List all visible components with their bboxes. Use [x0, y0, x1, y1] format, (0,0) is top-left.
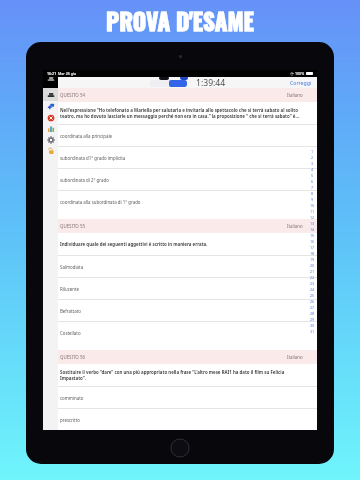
staticText: subordinata di 2° grado — [60, 177, 109, 183]
staticText: 100% — [295, 71, 305, 76]
button[interactable]: coordinata alla subordinata di 1° grado — [58, 191, 317, 212]
button[interactable]: subordinata di 2° grado — [58, 169, 317, 190]
staticText: PROVA D'ESAME — [106, 4, 254, 38]
staticText: 5 — [311, 173, 314, 178]
staticText: 26 — [310, 299, 315, 304]
button[interactable]: Statistiche — [43, 123, 58, 134]
staticText: 25 — [310, 293, 315, 298]
staticText: QUESITO 54 — [60, 92, 85, 98]
staticText: 6 — [311, 179, 314, 184]
staticText: Nell'espressione “Ho telefonato a Mariel… — [60, 107, 300, 119]
staticText: Italiano — [287, 223, 303, 229]
staticText: 16 — [310, 239, 315, 244]
button[interactable]: coordinata alla principale — [58, 125, 317, 146]
staticText: Italiano — [287, 92, 303, 98]
button[interactable]: Errori — [43, 112, 58, 123]
button[interactable]: Correggi — [290, 79, 317, 86]
staticText: 15 — [310, 233, 315, 238]
staticText: 12 — [310, 215, 315, 220]
staticText: Costellato — [60, 330, 81, 336]
staticText: 11 — [310, 209, 315, 214]
staticText: 4 — [311, 167, 314, 172]
staticText: QUESITO 55 — [60, 223, 85, 229]
staticText: 24 — [310, 287, 315, 292]
button[interactable]: Impostazioni — [43, 134, 58, 145]
staticText: Italiano — [287, 354, 303, 360]
staticText: 20 — [310, 263, 315, 268]
staticText: coordinata alla subordinata di 1° grado — [60, 199, 141, 205]
staticText: Salmodiata — [60, 264, 84, 270]
staticText: 30 — [310, 323, 315, 328]
staticText: Mar 26 giu — [58, 71, 77, 76]
staticText: 22 — [310, 275, 315, 280]
staticText: 16:21 — [47, 71, 57, 76]
button[interactable]: comminato — [58, 387, 317, 408]
staticText: 8 — [311, 191, 314, 196]
staticText: Befrattato — [60, 308, 81, 314]
staticText: 29 — [310, 317, 315, 322]
staticText: 21 — [310, 269, 315, 274]
staticText: comminato — [60, 395, 84, 401]
staticText: 9 — [311, 197, 314, 202]
button[interactable]: Salmodiata — [58, 256, 317, 277]
staticText: 10 — [310, 203, 315, 208]
staticText: 27 — [310, 305, 315, 310]
staticText: 1 — [311, 149, 314, 154]
staticText: 23 — [310, 281, 315, 286]
button[interactable]: prescritto — [58, 409, 317, 430]
button[interactable]: Menu — [43, 70, 58, 88]
button[interactable]: subordinata d1° grado implicita — [58, 147, 317, 168]
button[interactable]: Rilucente — [58, 278, 317, 299]
staticText: Rilucente — [60, 286, 80, 292]
staticText: coordinata alla principale — [60, 133, 113, 139]
staticText: 28 — [310, 311, 315, 316]
staticText: Sostituire il verbo “dare” con una più a… — [60, 369, 285, 381]
staticText: 2 — [311, 155, 314, 160]
staticText: 19 — [310, 257, 315, 262]
button[interactable]: Aggiungi — [43, 101, 58, 112]
staticText: 18 — [310, 251, 315, 256]
button[interactable]: Indice domande — [310, 148, 315, 334]
staticText: prescritto — [60, 417, 80, 423]
staticText: 1:39:44 — [196, 77, 226, 88]
staticText: 14 — [310, 227, 315, 232]
button[interactable] — [150, 80, 187, 87]
staticText: QUESITO 56 — [60, 354, 85, 360]
staticText: 17 — [310, 245, 315, 250]
staticText: 7 — [311, 185, 314, 190]
button[interactable]: Costellato — [58, 322, 317, 343]
staticText: 3 — [311, 161, 314, 166]
staticText: Individuare quale dei seguenti aggettivi… — [60, 241, 208, 247]
staticText: 31 — [310, 329, 315, 334]
button[interactable]: Sblocca — [43, 145, 58, 156]
staticText: subordinata d1° grado implicita — [60, 155, 126, 161]
button[interactable]: Befrattato — [58, 300, 317, 321]
staticText: 13 — [310, 221, 315, 226]
button[interactable]: Esercitazione — [43, 88, 58, 101]
